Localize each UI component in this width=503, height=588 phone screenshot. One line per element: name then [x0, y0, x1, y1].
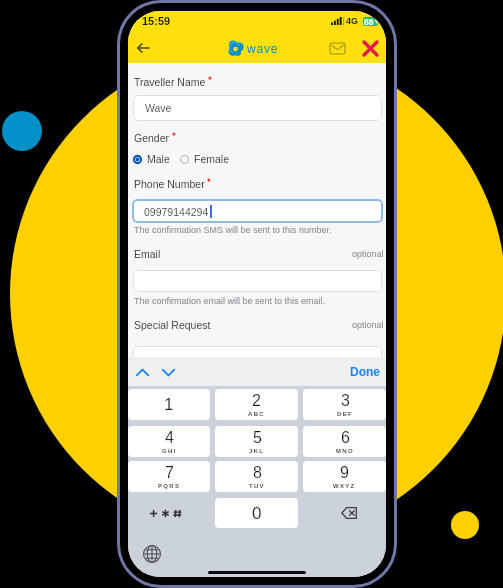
button[interactable]: 9	[303, 461, 386, 492]
staticText: Wave	[145, 102, 172, 114]
staticText: WXYZ	[333, 483, 356, 490]
button[interactable]: Close	[357, 35, 383, 61]
staticText: Female	[194, 153, 230, 165]
button[interactable]: 1	[128, 389, 210, 420]
staticText: 6	[341, 429, 350, 447]
staticText: DEF	[337, 411, 353, 418]
button[interactable]: 6	[303, 426, 386, 457]
button[interactable]: 5	[215, 426, 298, 457]
staticText: Gender	[134, 132, 170, 144]
button[interactable]: 3	[303, 389, 386, 420]
staticText: 0	[252, 504, 262, 523]
staticText: optional	[352, 249, 384, 259]
button[interactable]: Done	[344, 362, 386, 381]
staticText: 09979144294	[144, 206, 209, 218]
staticText: PQRS	[158, 483, 181, 490]
button[interactable]: 2	[215, 389, 298, 420]
button[interactable]: 7	[128, 461, 210, 492]
button[interactable]	[133, 270, 382, 292]
button[interactable]: Male	[131, 151, 172, 167]
button[interactable]: Change keyboard	[142, 544, 162, 564]
staticText: Email	[134, 248, 161, 260]
staticText: 1	[164, 395, 174, 414]
button[interactable]: Back	[130, 35, 156, 61]
button[interactable]: Symbols	[128, 498, 210, 528]
button[interactable]: 4	[128, 426, 210, 457]
staticText: Special Request	[134, 319, 211, 331]
button[interactable]: Wave	[133, 95, 382, 121]
staticText: ABC	[248, 411, 265, 418]
button[interactable]: Next field	[157, 361, 179, 383]
staticText: MNO	[336, 448, 354, 455]
staticText: 2	[252, 392, 261, 410]
staticText: The confirmation email will be sent to t…	[134, 296, 326, 306]
staticText: wave	[247, 42, 279, 55]
staticText: GHI	[162, 448, 177, 455]
button[interactable]: Messages	[324, 35, 350, 61]
staticText: TUV	[249, 483, 265, 490]
staticText: Male	[147, 153, 170, 165]
button[interactable]	[133, 346, 382, 368]
staticText: optional	[352, 320, 384, 330]
staticText: Phone Number	[134, 178, 205, 190]
button[interactable]: 8	[215, 461, 298, 492]
button[interactable]: Female	[178, 151, 232, 167]
staticText: 5	[253, 429, 262, 447]
button[interactable]: 09979144294	[132, 199, 383, 223]
staticText: Done	[350, 365, 380, 378]
staticText: Traveller Name	[134, 76, 206, 88]
staticText: 88	[364, 17, 374, 26]
staticText: 9	[340, 464, 349, 482]
staticText: 3	[341, 392, 350, 410]
staticText: The confirmation SMS will be sent to thi…	[134, 225, 332, 235]
staticText: 7	[165, 464, 174, 482]
staticText: 4	[165, 429, 174, 447]
button[interactable]: 0	[215, 498, 298, 528]
staticText: 8	[253, 464, 262, 482]
button[interactable]: Delete	[303, 498, 386, 528]
staticText: 4G	[346, 16, 359, 26]
staticText: 15:59	[142, 15, 171, 27]
button[interactable]: Previous field	[131, 361, 153, 383]
staticText: JKL	[249, 448, 265, 455]
